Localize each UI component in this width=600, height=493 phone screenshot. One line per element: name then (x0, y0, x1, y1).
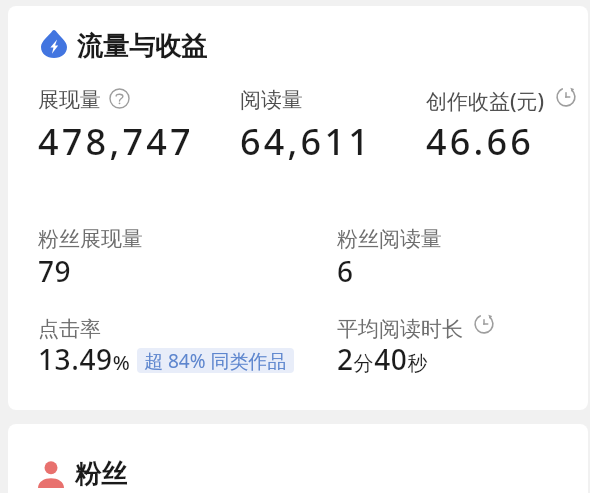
staticText: 粉丝展现量 (38, 226, 143, 252)
staticText: 展现量 (38, 87, 101, 113)
staticText: 阅读量 (240, 87, 303, 113)
button[interactable]: 粉丝阅读量 (337, 226, 442, 252)
staticText: 粉丝阅读量 (337, 226, 442, 252)
staticText: 13.49% (38, 340, 131, 378)
staticText: 64,611 (240, 117, 372, 166)
staticText: 2分40秒 (337, 340, 429, 378)
staticText: 创作收益(元) (426, 87, 545, 116)
button[interactable]: 粉丝 (38, 458, 127, 491)
staticText: 478,747 (38, 117, 194, 166)
staticText: 79 (38, 252, 72, 290)
staticText: 平均阅读时长 (337, 316, 463, 342)
staticText: 点击率 (38, 316, 101, 342)
staticText: 超 84% 同类作品 (144, 348, 287, 373)
button[interactable]: 流量与收益 (40, 30, 207, 63)
other: 粉丝 (38, 461, 64, 488)
staticText: 46.66 (426, 117, 535, 166)
staticText: 粉丝 (75, 458, 127, 491)
button[interactable]: 阅读量 (240, 87, 303, 113)
button[interactable]: 超 84% 同类作品 (144, 348, 287, 373)
button[interactable]: 平均阅读时长 (337, 316, 494, 342)
button[interactable]: 点击率 (38, 316, 101, 342)
button[interactable]: 创作收益(元) (426, 87, 576, 116)
other: 流量与收益 (41, 29, 67, 58)
button[interactable]: 粉丝展现量 (38, 226, 143, 252)
staticText: 流量与收益 (77, 30, 207, 63)
staticText: 6 (337, 252, 354, 290)
button[interactable]: 展现量 (38, 87, 130, 113)
